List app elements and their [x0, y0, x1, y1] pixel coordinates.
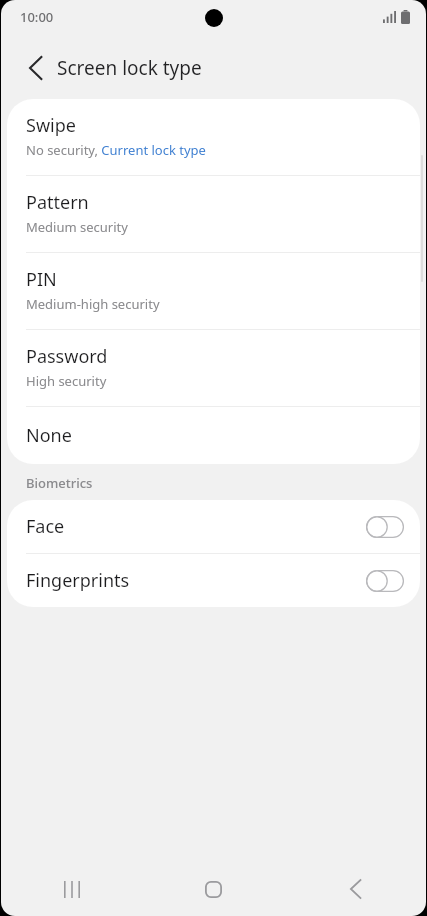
staticText: Password — [26, 344, 108, 369]
staticText: Biometrics — [26, 474, 93, 492]
button[interactable]: Password — [7, 330, 420, 406]
button[interactable]: Face — [7, 500, 420, 553]
staticText: Pattern — [26, 190, 89, 215]
button[interactable]: PIN — [7, 253, 420, 329]
button[interactable]: Back — [15, 48, 55, 88]
staticText: Swipe — [26, 113, 76, 138]
button[interactable]: Swipe — [7, 99, 420, 175]
button[interactable]: Fingerprints — [7, 554, 420, 607]
staticText: Screen lock type — [57, 55, 202, 81]
button[interactable]: Home — [142, 862, 284, 916]
staticText: Medium security — [26, 218, 128, 236]
staticText: 10:00 — [20, 8, 54, 26]
staticText: No security, Current lock type — [26, 141, 206, 159]
button[interactable]: Recent apps — [1, 862, 142, 916]
button[interactable]: Pattern — [7, 176, 420, 252]
staticText: Medium-high security — [26, 295, 160, 313]
staticText: Face — [26, 514, 65, 539]
button[interactable]: Back — [284, 862, 426, 916]
staticText: Fingerprints — [26, 568, 130, 593]
staticText: High security — [26, 372, 107, 390]
button[interactable]: None — [7, 407, 420, 464]
staticText: None — [26, 423, 72, 448]
staticText: PIN — [26, 267, 57, 292]
